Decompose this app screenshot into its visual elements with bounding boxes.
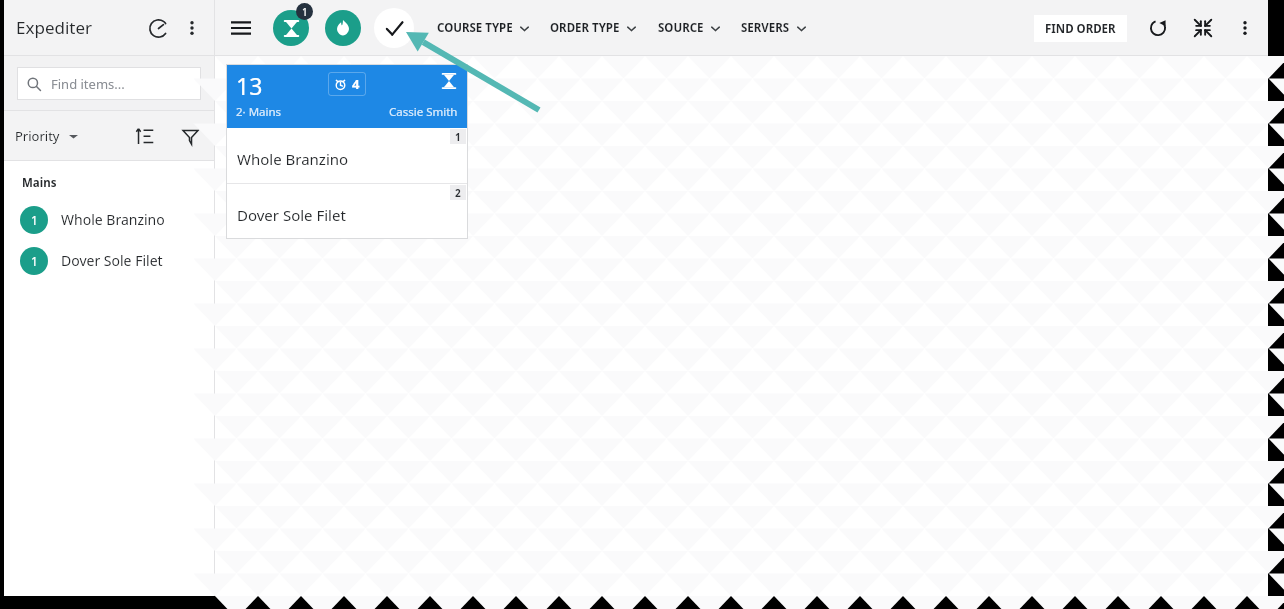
button[interactable]: Sort	[129, 120, 161, 152]
staticText: SERVERS	[741, 20, 790, 36]
button[interactable]: SERVERS	[741, 14, 806, 42]
staticText: 1	[302, 5, 308, 19]
staticText: 2	[455, 186, 461, 200]
staticText: Priority	[15, 127, 60, 145]
staticText: FIND ORDER	[1045, 21, 1116, 37]
staticText: Find items...	[51, 75, 125, 93]
button[interactable]: Priority	[15, 127, 78, 145]
button[interactable]: Completed orders	[374, 8, 414, 48]
button[interactable]: FIND ORDER	[1034, 15, 1127, 42]
staticText: 1	[31, 253, 38, 269]
staticText: Dover Sole Filet	[237, 205, 346, 225]
button[interactable]: Find items...	[17, 67, 201, 100]
button[interactable]: More options	[1228, 11, 1262, 45]
button[interactable]: More options	[176, 12, 208, 44]
staticText: Dover Sole Filet	[61, 251, 163, 270]
button[interactable]: 2	[226, 184, 468, 239]
staticText: Expediter	[16, 16, 93, 39]
staticText: 1	[31, 212, 38, 228]
button[interactable]: Fired orders	[325, 10, 361, 46]
button[interactable]: 1	[4, 204, 214, 235]
button[interactable]: COURSE TYPE	[437, 14, 529, 42]
staticText: Whole Branzino	[61, 210, 165, 229]
staticText: Mains	[22, 175, 57, 191]
button[interactable]: SOURCE	[658, 14, 720, 42]
button[interactable]: Pending orders	[273, 10, 309, 46]
button[interactable]: Filter	[174, 120, 206, 152]
staticText: SOURCE	[658, 20, 704, 36]
staticText: 13	[236, 70, 263, 101]
button[interactable]: Performance	[142, 12, 174, 44]
staticText: COURSE TYPE	[437, 20, 513, 36]
button[interactable]: ORDER TYPE	[550, 14, 636, 42]
button[interactable]: 1	[226, 128, 468, 183]
staticText: 2· Mains	[236, 104, 282, 120]
staticText: 4	[352, 75, 360, 93]
staticText: Whole Branzino	[237, 149, 349, 169]
staticText: ORDER TYPE	[550, 20, 620, 36]
button[interactable]: 13	[226, 64, 468, 239]
staticText: Cassie Smith	[389, 104, 458, 120]
button[interactable]: Collapse	[1186, 11, 1220, 45]
button[interactable]: Menu	[223, 10, 259, 46]
button[interactable]: Refresh	[1141, 11, 1175, 45]
button[interactable]: 1	[4, 245, 214, 276]
staticText: 1	[455, 130, 461, 144]
